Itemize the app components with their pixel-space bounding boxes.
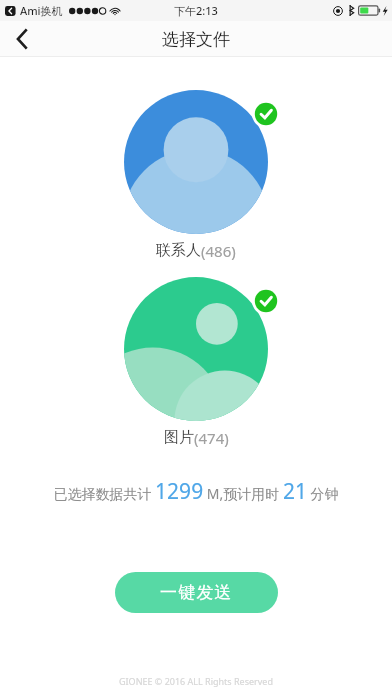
button[interactable]: 一键发送 bbox=[115, 572, 278, 613]
staticText: 一键发送 bbox=[160, 582, 233, 603]
staticText: 选择文件 bbox=[162, 29, 230, 50]
staticText: 图片 bbox=[164, 428, 194, 447]
staticText: (486) bbox=[201, 241, 236, 261]
button[interactable]: 图片 bbox=[0, 275, 392, 448]
staticText: 联系人 bbox=[156, 241, 201, 260]
button[interactable]: 联系人 bbox=[0, 88, 392, 261]
staticText: (474) bbox=[194, 428, 229, 448]
staticText: GIONEE © 2016 ALL Rights Reserved bbox=[119, 675, 273, 687]
staticText: 下午2:13 bbox=[174, 3, 218, 18]
button[interactable]: Back bbox=[0, 21, 44, 57]
staticText: 已选择数据共计 1299 M,预计用时 21 分钟 bbox=[53, 477, 339, 506]
staticText: Ami换机 bbox=[20, 3, 63, 18]
